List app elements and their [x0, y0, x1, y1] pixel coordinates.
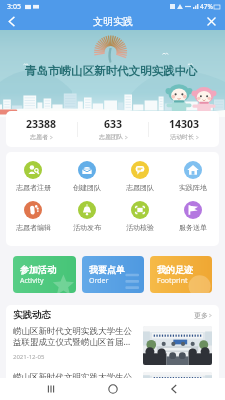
- staticText: 我的足迹: [157, 264, 193, 275]
- button[interactable]: 23388: [6, 111, 77, 147]
- staticText: 更多: [194, 311, 208, 320]
- staticText: 文明实践: [93, 15, 133, 28]
- staticText: 志愿者注册: [16, 183, 51, 192]
- staticText: Footprint: [157, 276, 188, 286]
- staticText: 志愿者: [30, 133, 48, 141]
- button[interactable]: 我要点单: [82, 256, 144, 293]
- button[interactable]: Back: [164, 379, 184, 399]
- button[interactable]: Close: [203, 13, 220, 30]
- staticText: 2021-12-05: [13, 353, 45, 361]
- button[interactable]: Home: [103, 379, 123, 399]
- button[interactable]: 14303: [149, 111, 219, 147]
- staticText: 活动核验: [126, 223, 154, 232]
- staticText: 崂山区新时代文明实践大学生公益联盟成立仪式暨崂山区首届…: [13, 372, 138, 394]
- button[interactable]: 活动发布: [60, 201, 113, 232]
- staticText: 志愿者编辑: [16, 223, 51, 232]
- staticText: 崂山区新时代文明实践大学生公益联盟成立仪式暨崂山区首届…: [13, 326, 138, 348]
- staticText: 志愿团队: [126, 183, 154, 192]
- button[interactable]: Back: [3, 13, 20, 30]
- button[interactable]: 崂山区新时代文明实践大学生公益联盟成立仪式暨崂山区首届…: [13, 372, 212, 395]
- button[interactable]: 活动核验: [113, 201, 166, 232]
- staticText: 14303: [169, 117, 200, 131]
- button[interactable]: 志愿者注册: [6, 161, 60, 192]
- staticText: Activity: [20, 276, 44, 286]
- staticText: 活动发布: [73, 223, 101, 232]
- staticText: 青岛市崂山区新时代文明实践中心: [25, 64, 198, 78]
- staticText: 实践阵地: [179, 183, 207, 192]
- button[interactable]: 参加活动: [13, 256, 76, 293]
- staticText: 实践动态: [13, 309, 51, 321]
- button[interactable]: 633: [78, 111, 148, 147]
- staticText: 47%: [200, 2, 213, 11]
- staticText: 3:05: [7, 2, 21, 12]
- staticText: 我要点单: [89, 264, 125, 275]
- staticText: 参加活动: [20, 264, 56, 275]
- button[interactable]: 志愿者编辑: [6, 201, 60, 232]
- staticText: Order: [89, 276, 109, 286]
- button[interactable]: 更多: [194, 311, 212, 320]
- button[interactable]: 志愿团队: [113, 161, 166, 192]
- button[interactable]: 我的足迹: [150, 256, 212, 293]
- staticText: 服务送单: [179, 223, 207, 232]
- button[interactable]: 实践阵地: [166, 161, 219, 192]
- staticText: 活动时长: [170, 133, 194, 141]
- button[interactable]: 服务送单: [166, 201, 219, 232]
- button[interactable]: 创建团队: [60, 161, 113, 192]
- staticText: 志愿团队: [99, 133, 123, 141]
- staticText: 633: [104, 117, 123, 131]
- staticText: 23388: [26, 117, 57, 131]
- staticText: 创建团队: [73, 183, 101, 192]
- button[interactable]: 崂山区新时代文明实践大学生公益联盟成立仪式暨崂山区首届…: [13, 326, 212, 366]
- button[interactable]: Recents: [41, 379, 61, 399]
